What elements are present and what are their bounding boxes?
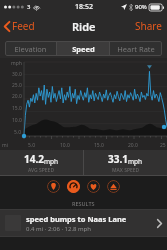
button[interactable]: speed bumps to Naas Lane: [0, 210, 167, 236]
staticText: Feed: [12, 19, 35, 33]
button[interactable]: Speed: [57, 41, 109, 56]
button[interactable]: Elevation: [47, 180, 60, 193]
button[interactable]: Share: [130, 14, 167, 38]
staticText: 90%: [135, 3, 147, 11]
button[interactable]: Power: [107, 180, 120, 193]
staticText: Heart Rate: [117, 44, 155, 54]
staticText: 25: [160, 142, 166, 149]
staticText: mph: [44, 157, 59, 166]
staticText: 5.0: [14, 129, 22, 136]
staticText: mi: [2, 142, 8, 149]
button[interactable]: 14.2: [0, 150, 83, 175]
staticText: 10.0: [12, 117, 22, 124]
staticText: 14.2: [24, 152, 44, 166]
staticText: 0.4 mi · 2:06 · 12.8 mph: [26, 225, 92, 233]
staticText: 5.0: [28, 142, 36, 149]
staticText: 15.0: [94, 142, 104, 149]
staticText: speed bumps to Naas Lane: [26, 214, 127, 224]
button[interactable]: Feed: [0, 15, 41, 37]
staticText: 20.0: [128, 142, 138, 149]
button[interactable]: Elevation: [5, 41, 56, 56]
staticText: MAX SPEED: [112, 167, 140, 174]
button[interactable]: Speed: [67, 180, 80, 193]
other: Open result: [157, 219, 162, 228]
staticText: 20.0: [12, 93, 22, 100]
button[interactable]: Heart rate: [87, 180, 100, 193]
button[interactable]: Heart Rate: [110, 41, 162, 56]
staticText: 10.0: [60, 142, 70, 149]
staticText: 33.1: [108, 152, 128, 166]
staticText: 30.0: [12, 71, 22, 78]
staticText: Ride: [72, 19, 96, 34]
staticText: 18:52: [75, 2, 93, 12]
button[interactable]: 33.1: [84, 150, 167, 175]
staticText: Speed: [72, 44, 95, 54]
staticText: 3: [27, 3, 31, 11]
staticText: 25.0: [12, 82, 22, 89]
staticText: RESULTS: [72, 200, 95, 207]
staticText: AVG SPEED: [28, 167, 55, 174]
staticText: Elevation: [14, 44, 47, 54]
staticText: 15.0: [12, 105, 22, 112]
staticText: mph: [128, 157, 143, 166]
staticText: mph: [11, 60, 22, 67]
